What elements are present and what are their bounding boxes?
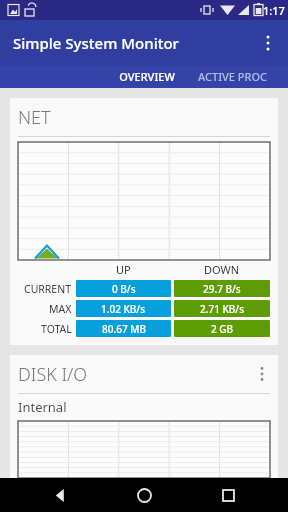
button[interactable]: 1.02 KB/s	[76, 300, 171, 317]
staticText: 0 B/s	[112, 282, 136, 296]
staticText: 29.7 B/s	[203, 282, 241, 296]
button[interactable]: Back	[36, 478, 84, 512]
staticText: Internal	[18, 398, 67, 416]
staticText: DOWN	[204, 262, 240, 277]
staticText: Simple System Monitor	[13, 33, 179, 53]
button[interactable]: 0 B/s	[76, 280, 171, 297]
button[interactable]: 80.67 MB	[76, 320, 171, 337]
staticText: 1:17	[263, 3, 285, 18]
button[interactable]: Home	[120, 478, 168, 512]
staticText: 2 GB	[211, 322, 234, 336]
staticText: CURRENT	[24, 282, 72, 296]
button[interactable]: 2.71 KB/s	[174, 300, 270, 317]
button[interactable]: OVERVIEW	[104, 65, 190, 88]
staticText: OVERVIEW	[119, 69, 175, 84]
button[interactable]: DISK I/O	[10, 355, 278, 478]
button[interactable]: Card options	[246, 358, 278, 390]
button[interactable]: ACTIVE PROC	[190, 65, 288, 88]
staticText: DISK I/O	[18, 362, 88, 387]
staticText: MAX	[49, 302, 72, 316]
button[interactable]: 29.7 B/s	[174, 280, 270, 297]
staticText: ACTIVE PROC	[198, 69, 268, 84]
button[interactable]: NET	[10, 98, 278, 345]
staticText: 1.02 KB/s	[101, 302, 146, 316]
button[interactable]: 2 GB	[174, 320, 270, 337]
staticText: 2.71 KB/s	[200, 302, 245, 316]
button[interactable]: Recent apps	[204, 478, 252, 512]
button[interactable]: More options	[248, 23, 288, 63]
staticText: TOTAL	[41, 322, 72, 336]
staticText: UP	[116, 262, 131, 277]
staticText: 80.67 MB	[102, 322, 146, 336]
staticText: NET	[18, 105, 51, 130]
